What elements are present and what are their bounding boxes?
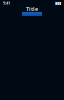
staticText: 9:41 xyxy=(3,0,10,6)
staticText: Title xyxy=(26,5,38,13)
staticText: ▮▮▮ xyxy=(55,1,61,5)
